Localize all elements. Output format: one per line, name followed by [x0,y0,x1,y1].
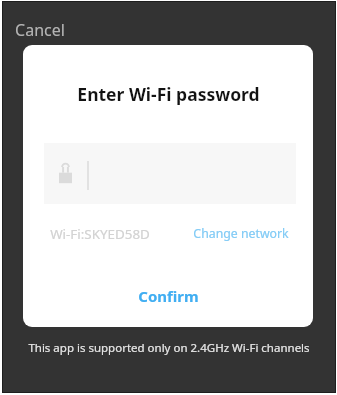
staticText: Confirm [138,286,199,306]
button[interactable]: Password input field [44,143,296,204]
staticText: Change network [193,225,289,242]
button[interactable]: Change network [191,223,291,244]
staticText: Wi-Fi:SKYED58D [50,225,150,243]
staticText: This app is supported only on 2.4GHz Wi-… [28,340,310,356]
button[interactable]: Confirm [23,273,313,319]
staticText: Enter Wi-Fi password [77,82,260,106]
staticText: Cancel [15,19,65,41]
button[interactable]: Cancel [13,17,67,43]
